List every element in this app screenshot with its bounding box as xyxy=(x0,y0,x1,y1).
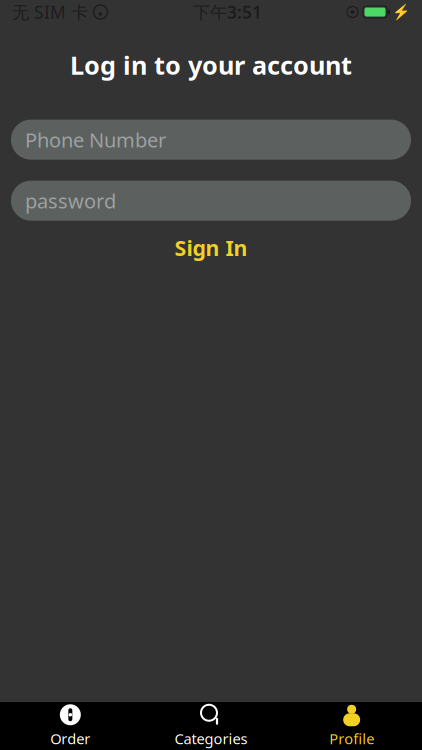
staticText: Order xyxy=(50,729,90,748)
staticText: ⚡ xyxy=(392,4,410,20)
button[interactable]: Sign In xyxy=(156,228,265,268)
staticText: 下午3:51 xyxy=(193,0,262,23)
staticText: Profile xyxy=(329,729,374,748)
staticText: Categories xyxy=(174,729,247,748)
staticText: password xyxy=(25,187,116,214)
staticText: Phone Number xyxy=(25,126,166,153)
button[interactable]: Order xyxy=(0,700,141,750)
staticText: Sign In xyxy=(174,234,247,262)
staticText: Log in to your account xyxy=(70,48,352,82)
button[interactable]: Categories xyxy=(141,700,281,750)
staticText: 无 SIM 卡 xyxy=(12,0,88,23)
button[interactable]: Profile xyxy=(281,700,422,750)
